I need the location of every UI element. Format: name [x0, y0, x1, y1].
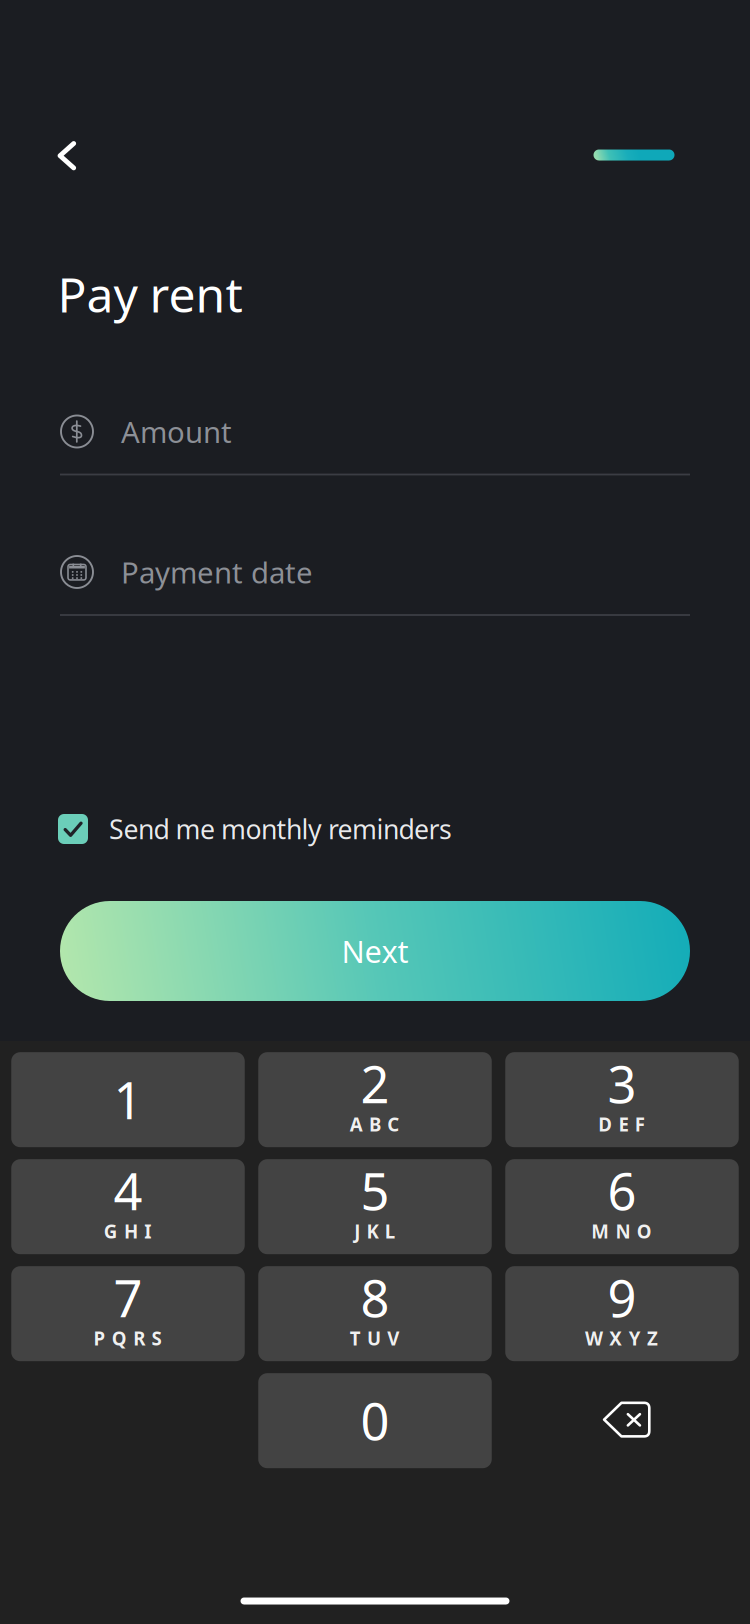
staticText: 0: [360, 1387, 389, 1454]
button[interactable]: Amount: [60, 409, 690, 453]
button[interactable]: 0: [258, 1373, 492, 1468]
staticText: Payment date: [121, 552, 313, 591]
staticText: PQRS: [94, 1326, 161, 1351]
button[interactable]: 2: [258, 1052, 492, 1147]
staticText: Send me monthly reminders: [109, 811, 452, 847]
button[interactable]: Delete: [505, 1373, 739, 1468]
staticText: DEF: [598, 1112, 645, 1137]
staticText: 8: [360, 1264, 389, 1331]
button[interactable]: 9: [505, 1266, 739, 1361]
staticText: 2: [360, 1050, 389, 1117]
staticText: JKL: [354, 1219, 395, 1244]
staticText: WXYZ: [585, 1326, 658, 1351]
button[interactable]: Next: [60, 901, 690, 1001]
staticText: Next: [341, 931, 408, 971]
staticText: ABC: [350, 1112, 399, 1137]
staticText: 1: [113, 1066, 142, 1133]
staticText: 4: [113, 1157, 142, 1224]
staticText: 5: [360, 1157, 389, 1224]
button[interactable]: 5: [258, 1159, 492, 1254]
button[interactable]: 1: [11, 1052, 245, 1147]
button[interactable]: 3: [505, 1052, 739, 1147]
button[interactable]: 8: [258, 1266, 492, 1361]
staticText: GHI: [104, 1219, 151, 1244]
button[interactable]: Back: [30, 119, 102, 191]
button[interactable]: Payment date: [60, 550, 690, 594]
staticText: Amount: [121, 412, 232, 451]
button[interactable]: Send me monthly reminders: [58, 807, 468, 851]
button[interactable]: 7: [11, 1266, 245, 1361]
staticText: 3: [607, 1050, 636, 1117]
staticText: TUV: [350, 1326, 399, 1351]
staticText: 7: [113, 1264, 142, 1331]
staticText: Pay rent: [57, 262, 242, 326]
staticText: 6: [607, 1157, 636, 1224]
button[interactable]: 4: [11, 1159, 245, 1254]
staticText: 9: [607, 1264, 636, 1331]
staticText: MNO: [591, 1219, 652, 1244]
button[interactable]: 6: [505, 1159, 739, 1254]
